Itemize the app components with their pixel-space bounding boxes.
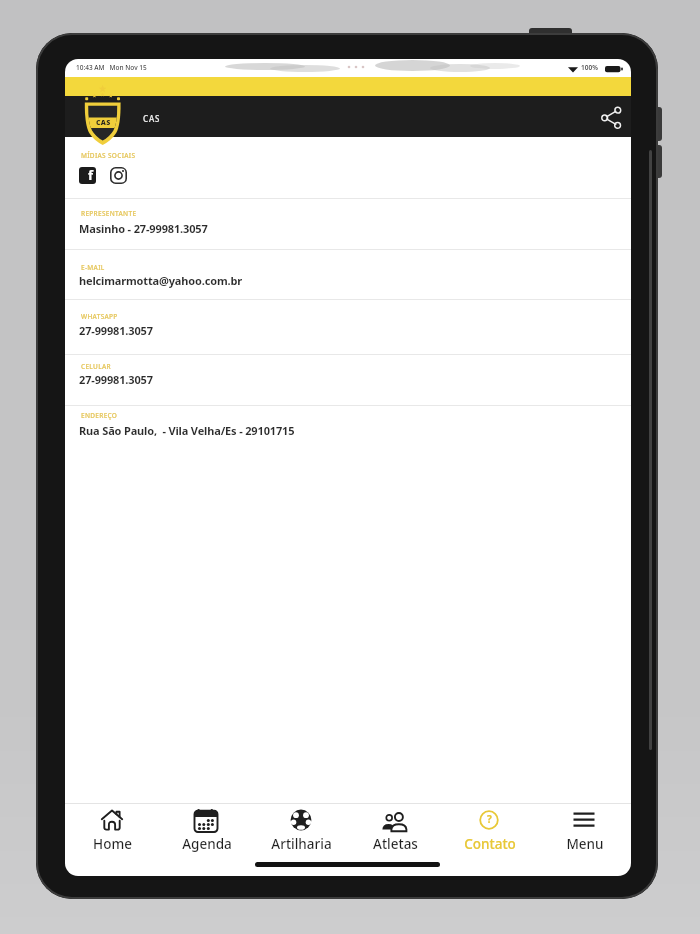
staticText: Atletas — [373, 835, 418, 853]
staticText: 27-99981.3057 — [79, 323, 153, 338]
staticText: 27-99981.3057 — [79, 372, 153, 387]
staticText: Contato — [464, 835, 516, 853]
staticText: WHATSAPP — [81, 312, 118, 321]
button[interactable]: Atletas — [348, 803, 443, 863]
staticText: CAS — [143, 113, 161, 124]
button[interactable]: Menu — [537, 803, 631, 863]
button[interactable] — [110, 167, 127, 184]
button[interactable] — [65, 203, 631, 239]
button[interactable]: Home — [65, 803, 160, 863]
button[interactable] — [65, 356, 631, 390]
staticText: CELULAR — [81, 362, 111, 371]
button[interactable]: Agenda — [159, 803, 254, 863]
button[interactable] — [65, 306, 631, 341]
staticText: 100% — [581, 63, 598, 72]
staticText: Artilharia — [271, 835, 332, 853]
staticText: ENDEREÇO — [81, 411, 118, 420]
button[interactable]: Artilharia — [254, 803, 349, 863]
staticText: Masinho - 27-99981.3057 — [79, 221, 208, 236]
staticText: f — [88, 167, 94, 183]
staticText: ? — [487, 812, 492, 826]
button[interactable] — [65, 405, 631, 441]
staticText: Home — [93, 835, 132, 853]
button[interactable] — [65, 257, 631, 291]
staticText: MÍDIAS SOCIAIS — [81, 151, 136, 160]
button[interactable]: ? — [442, 803, 537, 863]
staticText: 10:43 AM Mon Nov 15 — [76, 63, 147, 72]
staticText: REPRESENTANTE — [81, 209, 137, 218]
staticText: Rua São Paulo, - Vila Velha/Es - 2910171… — [79, 423, 295, 438]
staticText: E-MAIL — [81, 263, 105, 272]
staticText: Agenda — [182, 835, 232, 853]
button[interactable] — [596, 102, 626, 132]
staticText: helcimarmotta@yahoo.com.br — [79, 273, 243, 288]
button[interactable]: f — [79, 167, 96, 184]
staticText: Menu — [566, 835, 604, 853]
staticText: CAS — [96, 118, 111, 128]
